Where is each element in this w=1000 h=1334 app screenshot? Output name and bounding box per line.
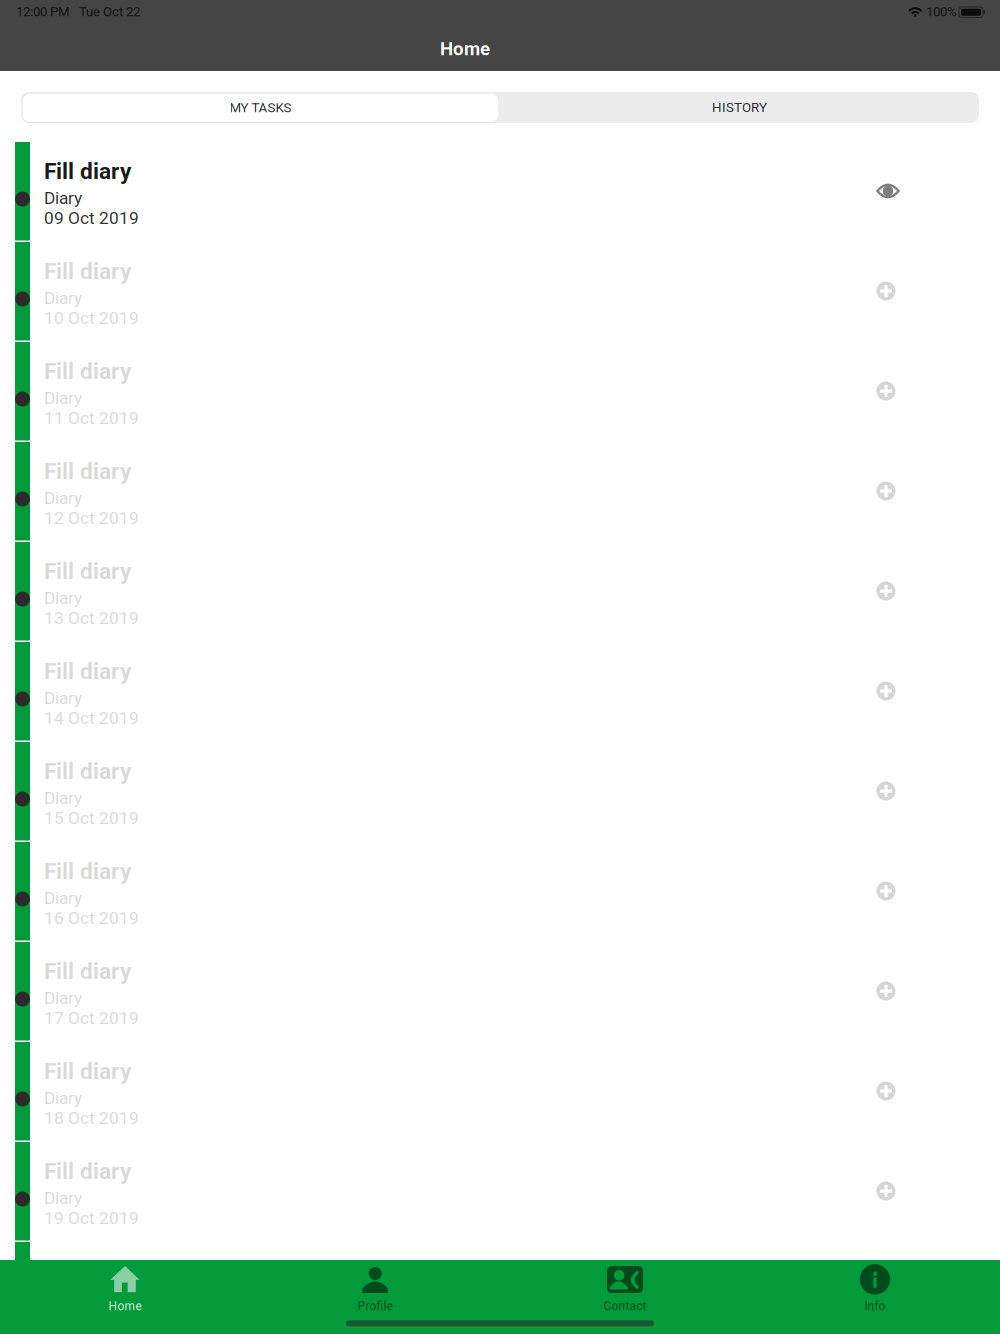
staticText: Diary (44, 388, 82, 408)
button[interactable]: Add diary entry (864, 669, 908, 713)
staticText: 14 Oct 2019 (44, 708, 139, 728)
button[interactable]: Fill diary (0, 1242, 1000, 1334)
button[interactable]: Add diary entry (864, 869, 908, 913)
button[interactable]: Fill diary (0, 542, 1000, 642)
button[interactable]: Fill diary (0, 1142, 1000, 1242)
staticText: Profile (357, 1299, 392, 1313)
button[interactable]: MY TASKS (21, 92, 499, 123)
staticText: Diary (44, 1188, 82, 1208)
staticText: Diary (44, 888, 82, 908)
button[interactable]: Add diary entry (864, 269, 908, 313)
button[interactable]: View diary entry (866, 169, 910, 213)
button[interactable]: Add diary entry (864, 1169, 908, 1213)
staticText: 18 Oct 2019 (44, 1108, 139, 1128)
staticText: Fill diary (44, 1258, 131, 1285)
button[interactable]: Fill diary (0, 1042, 1000, 1142)
staticText: Fill diary (44, 458, 131, 485)
staticText: 13 Oct 2019 (44, 608, 139, 628)
staticText: 12:00 PM (16, 4, 70, 20)
button[interactable]: Contact (500, 1260, 750, 1334)
staticText: Fill diary (44, 758, 131, 785)
button[interactable]: Add diary entry (864, 469, 908, 513)
staticText: Diary (44, 488, 82, 508)
staticText: Home (440, 38, 490, 60)
button[interactable]: Fill diary (0, 142, 1000, 242)
staticText: Diary (44, 188, 82, 208)
button[interactable]: Fill diary (0, 942, 1000, 1042)
button[interactable]: Fill diary (0, 242, 1000, 342)
button[interactable]: Add diary entry (864, 1269, 908, 1313)
button[interactable]: Profile (250, 1260, 500, 1334)
staticText: Fill diary (44, 958, 131, 985)
staticText: Fill diary (44, 658, 131, 685)
button[interactable]: Fill diary (0, 842, 1000, 942)
button[interactable]: Add diary entry (864, 769, 908, 813)
staticText: Fill diary (44, 158, 131, 185)
button[interactable]: Add diary entry (864, 569, 908, 613)
staticText: MY TASKS (229, 100, 291, 115)
button[interactable]: HISTORY (500, 92, 979, 123)
staticText: Fill diary (44, 258, 131, 285)
staticText: Diary (44, 788, 82, 808)
staticText: Fill diary (44, 858, 131, 885)
staticText: 20 Oct 2019 (44, 1308, 139, 1328)
staticText: 100% (926, 4, 957, 20)
button[interactable]: Add diary entry (864, 969, 908, 1013)
staticText: Diary (44, 588, 82, 608)
staticText: 10 Oct 2019 (44, 308, 139, 328)
staticText: Fill diary (44, 1058, 131, 1085)
staticText: HISTORY (712, 100, 767, 115)
staticText: 11 Oct 2019 (44, 408, 139, 428)
staticText: Diary (44, 1088, 82, 1108)
button[interactable]: Fill diary (0, 442, 1000, 542)
staticText: 17 Oct 2019 (44, 1008, 139, 1028)
staticText: 19 Oct 2019 (44, 1208, 139, 1228)
button[interactable]: Add diary entry (864, 369, 908, 413)
staticText: Home (108, 1299, 141, 1313)
button[interactable]: Fill diary (0, 642, 1000, 742)
staticText: 15 Oct 2019 (44, 808, 139, 828)
staticText: 12 Oct 2019 (44, 508, 139, 528)
staticText: 16 Oct 2019 (44, 908, 139, 928)
button[interactable]: Fill diary (0, 742, 1000, 842)
button[interactable]: Info (750, 1260, 1000, 1334)
staticText: Diary (44, 288, 82, 308)
staticText: 09 Oct 2019 (44, 208, 139, 228)
staticText: Fill diary (44, 358, 131, 385)
staticText: Contact (603, 1299, 646, 1313)
staticText: Tue Oct 22 (79, 4, 140, 20)
button[interactable]: Home (0, 1260, 250, 1334)
staticText: Diary (44, 988, 82, 1008)
staticText: Fill diary (44, 1158, 131, 1185)
staticText: Info (864, 1299, 885, 1313)
button[interactable]: Add diary entry (864, 1069, 908, 1113)
staticText: Diary (44, 688, 82, 708)
button[interactable]: Fill diary (0, 342, 1000, 442)
staticText: Fill diary (44, 558, 131, 585)
